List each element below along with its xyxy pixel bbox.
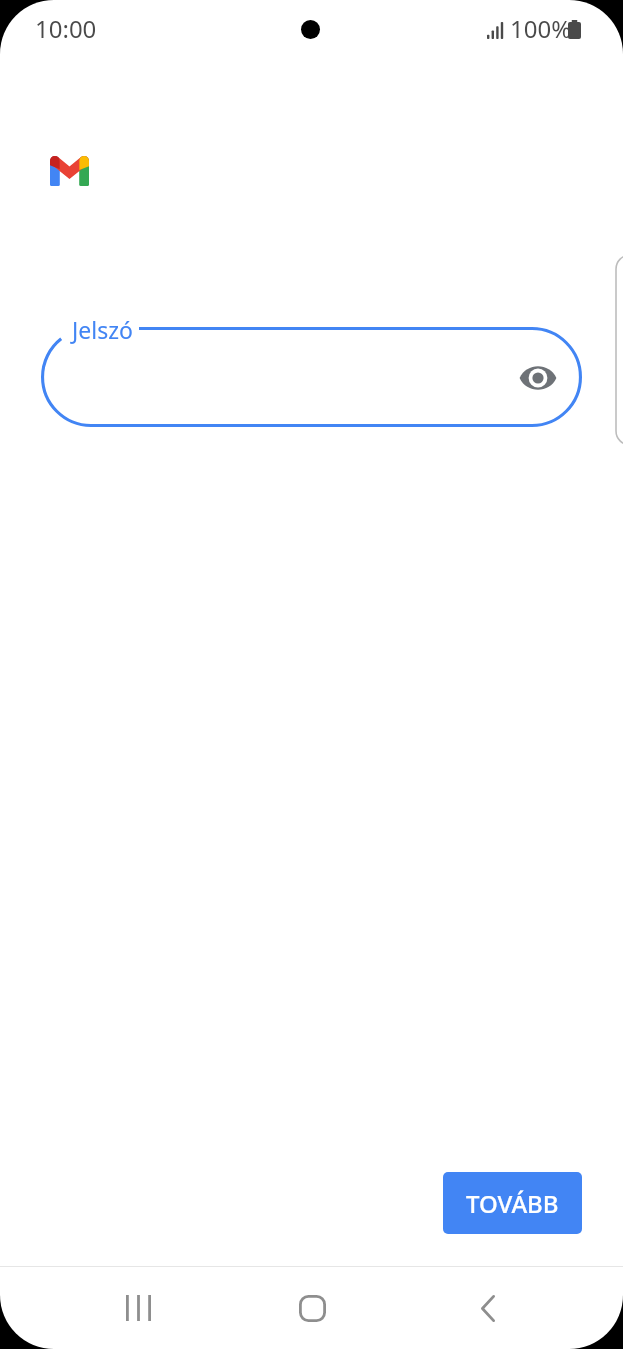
- button[interactable]: Recent apps: [96, 1267, 181, 1349]
- staticText: 100%: [510, 12, 572, 45]
- button[interactable]: Home: [270, 1267, 355, 1349]
- staticText: TOVÁBB: [466, 1187, 559, 1220]
- button[interactable]: Back: [444, 1267, 529, 1349]
- staticText: Jelszó: [72, 314, 133, 345]
- button[interactable]: TOVÁBB: [443, 1172, 582, 1234]
- button[interactable]: Jelszó: [41, 327, 582, 427]
- staticText: 10:00: [35, 12, 97, 45]
- button[interactable]: Show password: [512, 351, 564, 403]
